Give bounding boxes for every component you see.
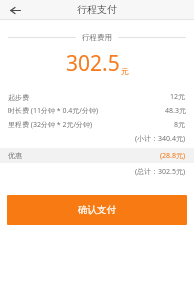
button[interactable]: 优惠 (0, 148, 194, 163)
staticText: 行程支付 (77, 3, 117, 16)
staticText: 起步费 (8, 93, 29, 102)
staticText: 8元 (174, 120, 186, 130)
staticText: 时长费 (11分钟 * 0.4元/分钟) (8, 106, 99, 116)
staticText: 元 (121, 66, 129, 76)
staticText: 48.3元 (165, 106, 186, 116)
staticText: 确认支付 (78, 204, 116, 216)
staticText: 12元 (170, 92, 186, 102)
staticText: 里程费 (32分钟 * 2元/分钟) (8, 120, 93, 130)
staticText: 行程费用 (82, 33, 112, 42)
staticText: 优惠 (8, 151, 22, 160)
staticText: 302.5 (66, 49, 120, 78)
staticText: (28.8元) (160, 151, 186, 161)
staticText: (总计：302.5元) (135, 167, 186, 177)
button[interactable]: 确认支付 (7, 195, 187, 225)
staticText: (小计：340.4元) (135, 134, 186, 144)
button[interactable]: Back (6, 1, 24, 19)
